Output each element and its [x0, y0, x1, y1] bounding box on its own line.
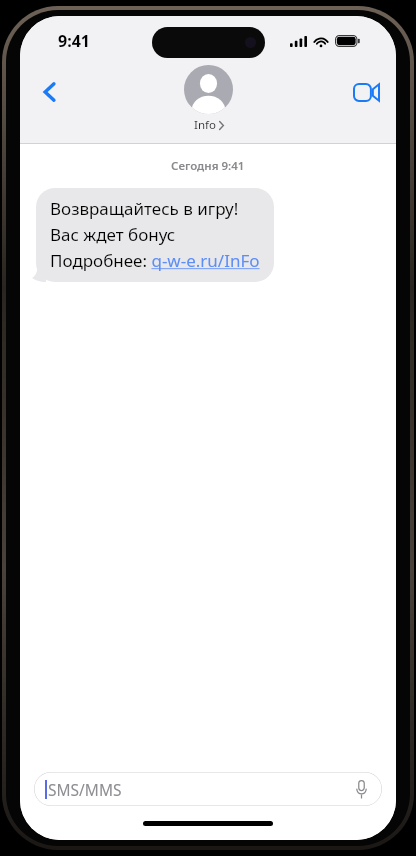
button[interactable]: Возвращайтесь в игру!: [36, 188, 274, 282]
button[interactable]: Back: [26, 68, 74, 116]
staticText: Сегодня 9:41: [171, 158, 245, 174]
staticText: 9:41: [58, 30, 90, 52]
staticText: Вас ждет бонус: [50, 223, 176, 246]
button[interactable]: Voice message: [350, 778, 372, 800]
staticText: Info: [194, 117, 216, 133]
button[interactable]: Info: [184, 64, 233, 133]
staticText: SMS/MMS: [48, 779, 122, 800]
button[interactable]: Video call: [342, 68, 390, 116]
staticText: Возвращайтесь в игру!: [50, 197, 239, 220]
staticText: Подробнее: q-w-e.ru/InFo: [50, 249, 260, 272]
button[interactable]: SMS/MMS: [34, 772, 382, 806]
